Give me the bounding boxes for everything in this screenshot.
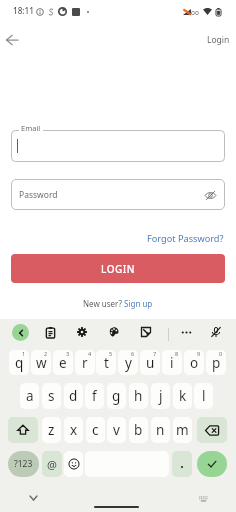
button[interactable]: Hide keyboard xyxy=(24,489,42,507)
staticText: m xyxy=(176,421,189,439)
staticText: s xyxy=(48,387,55,405)
button[interactable]: Themes xyxy=(104,322,124,342)
button[interactable]: Enter xyxy=(197,451,227,477)
staticText: r xyxy=(82,354,88,372)
staticText: 7 xyxy=(153,350,157,357)
staticText: 9 xyxy=(197,350,201,357)
button[interactable]: j xyxy=(151,383,170,409)
button[interactable]: l xyxy=(194,383,213,409)
staticText: t xyxy=(104,354,109,372)
staticText: l xyxy=(202,387,206,405)
button[interactable]: Emoji xyxy=(64,451,83,477)
staticText: z xyxy=(48,421,55,439)
button[interactable]: v xyxy=(107,417,126,443)
staticText: w xyxy=(36,354,47,372)
button[interactable]: h xyxy=(129,383,148,409)
staticText: k xyxy=(179,387,187,405)
staticText: g xyxy=(112,387,121,405)
staticText: x xyxy=(70,421,78,439)
staticText: q xyxy=(15,354,24,372)
staticText: h xyxy=(134,387,143,405)
button[interactable]: Stickers xyxy=(136,322,156,342)
button[interactable]: e xyxy=(53,350,73,375)
button[interactable]: LOGIN xyxy=(11,254,225,283)
button[interactable]: r xyxy=(75,350,95,375)
staticText: 8 xyxy=(175,350,179,357)
button[interactable]: p xyxy=(206,350,226,375)
staticText: 0 xyxy=(219,350,223,357)
staticText: o xyxy=(190,354,199,372)
button[interactable]: Show password xyxy=(201,186,219,204)
button[interactable]: Period xyxy=(172,451,192,477)
staticText: d xyxy=(69,387,78,405)
staticText: 4 xyxy=(88,350,92,357)
staticText: u xyxy=(146,354,155,372)
button[interactable]: n xyxy=(151,417,170,443)
button[interactable]: b xyxy=(129,417,148,443)
button[interactable]: z xyxy=(42,417,61,443)
staticText: Login xyxy=(207,34,230,46)
staticText: y xyxy=(125,354,132,372)
other: Change keyboard xyxy=(198,495,209,503)
button[interactable]: Settings xyxy=(72,322,92,342)
button[interactable]: ?123 xyxy=(8,451,39,477)
button[interactable]: y xyxy=(118,350,138,375)
button[interactable]: Sign up xyxy=(124,298,153,309)
staticText: 1 xyxy=(22,350,26,357)
button[interactable]: At sign xyxy=(42,451,62,477)
staticText: Password xyxy=(19,189,58,201)
staticText: LOGIN xyxy=(101,262,136,276)
staticText: 5 xyxy=(109,350,113,357)
button[interactable]: d xyxy=(64,383,83,409)
button[interactable]: Shift xyxy=(8,417,38,443)
staticText: 2 xyxy=(44,350,48,357)
button[interactable]: c xyxy=(86,417,105,443)
staticText: b xyxy=(134,421,143,439)
button[interactable]: k xyxy=(173,383,192,409)
staticText: c xyxy=(92,421,99,439)
button[interactable]: w xyxy=(31,350,51,375)
button[interactable]: Forgot Password? xyxy=(145,230,226,247)
staticText: p xyxy=(212,354,221,372)
button[interactable]: Back xyxy=(1,29,23,51)
button[interactable]: More options xyxy=(176,322,196,342)
button[interactable]: Expand toolbar xyxy=(12,324,29,341)
button[interactable]: g xyxy=(107,383,126,409)
staticText: 3 xyxy=(66,350,70,357)
button[interactable]: Backspace xyxy=(197,417,227,443)
staticText: 18:11 xyxy=(13,5,34,16)
staticText: j xyxy=(159,387,163,405)
staticText: ?123 xyxy=(14,458,33,470)
staticText: @ xyxy=(47,457,57,472)
button[interactable]: i xyxy=(162,350,182,375)
button[interactable]: t xyxy=(96,350,116,375)
button[interactable]: x xyxy=(64,417,83,443)
staticText: n xyxy=(156,421,165,439)
staticText: Email xyxy=(21,123,41,133)
button[interactable]: f xyxy=(85,383,104,409)
button[interactable]: s xyxy=(42,383,61,409)
staticText: 6 xyxy=(131,350,135,357)
button[interactable]: q xyxy=(9,350,29,375)
button[interactable]: m xyxy=(173,417,192,443)
button[interactable]: o xyxy=(184,350,204,375)
button[interactable]: Clipboard xyxy=(40,322,60,342)
button[interactable]: u xyxy=(140,350,160,375)
button[interactable]: Voice input off xyxy=(206,322,226,342)
button[interactable]: Password xyxy=(11,179,225,210)
staticText: e xyxy=(59,354,67,372)
button[interactable]: Email field xyxy=(11,130,225,162)
staticText: a xyxy=(26,387,34,405)
button[interactable]: Login xyxy=(205,32,232,48)
staticText: i xyxy=(170,354,174,372)
staticText: oo xyxy=(191,8,199,17)
staticText: Forgot Password? xyxy=(147,232,224,245)
staticText: Sign up xyxy=(124,298,153,309)
staticText: f xyxy=(92,387,97,405)
staticText: v xyxy=(113,421,120,439)
staticText: New user? xyxy=(83,298,124,309)
button[interactable]: a xyxy=(20,383,39,409)
